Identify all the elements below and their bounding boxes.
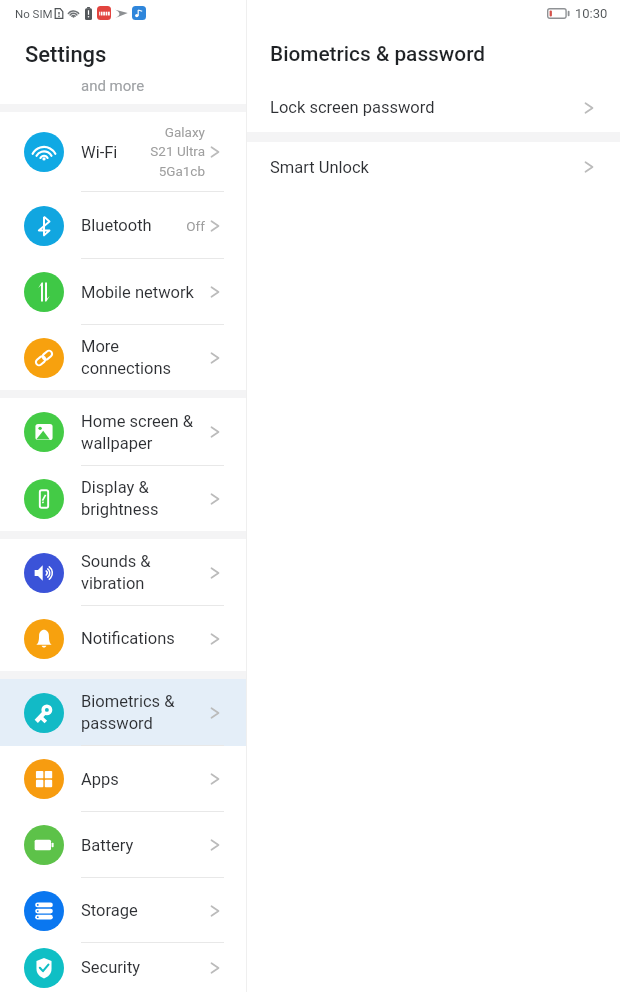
staticText: Home screen & wallpaper xyxy=(81,412,194,453)
staticText: and more xyxy=(81,77,145,95)
button[interactable]: Smart Unlock xyxy=(247,142,620,192)
staticText: Notifications xyxy=(81,629,175,648)
staticText: Mobile network xyxy=(81,283,194,302)
button[interactable]: Bluetooth xyxy=(0,192,246,259)
staticText: Settings xyxy=(25,42,107,68)
staticText: Biometrics & password xyxy=(81,692,175,733)
button[interactable]: More connections xyxy=(0,325,246,390)
button[interactable]: Sounds & vibration xyxy=(0,539,246,606)
button[interactable]: Wi-Fi xyxy=(0,112,246,192)
staticText: Storage xyxy=(81,901,138,920)
button[interactable]: Mobile network xyxy=(0,259,246,325)
button[interactable]: Apps xyxy=(0,746,246,812)
staticText: Biometrics & password xyxy=(270,42,486,66)
staticText: Lock screen password xyxy=(270,98,435,117)
staticText: More connections xyxy=(81,337,172,378)
button[interactable]: Battery xyxy=(0,812,246,878)
button[interactable]: Display & brightness xyxy=(0,466,246,531)
staticText: Display & brightness xyxy=(81,478,159,519)
button[interactable]: Home screen & wallpaper xyxy=(0,398,246,466)
staticText: Wi-Fi xyxy=(81,143,118,162)
staticText: No SIM xyxy=(15,7,53,20)
button[interactable]: Notifications xyxy=(0,606,246,671)
staticText: Galaxy S21 Ultra 5Ga1cb xyxy=(150,124,205,180)
staticText: Battery xyxy=(81,836,134,855)
button[interactable]: Lock screen password xyxy=(247,83,620,132)
button[interactable]: Security xyxy=(0,943,246,992)
staticText: Off xyxy=(186,218,205,234)
staticText: 10:30 xyxy=(575,6,608,21)
button[interactable]: Storage xyxy=(0,878,246,943)
staticText: Apps xyxy=(81,770,119,789)
staticText: Security xyxy=(81,958,141,977)
button[interactable]: Biometrics & password xyxy=(0,679,246,746)
staticText: Smart Unlock xyxy=(270,158,369,177)
staticText: Sounds & vibration xyxy=(81,552,151,593)
staticText: Bluetooth xyxy=(81,216,152,235)
